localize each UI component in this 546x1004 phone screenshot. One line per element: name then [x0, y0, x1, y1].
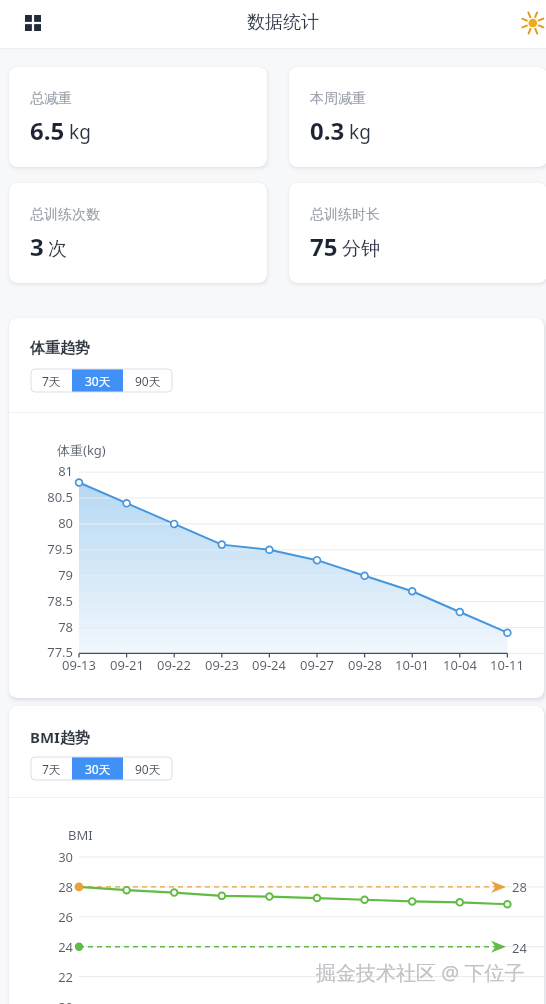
staticText: 总训练时长	[310, 206, 380, 224]
staticText: 79	[16, 566, 73, 584]
button[interactable]: 总减重	[9, 67, 267, 167]
staticText: 分钟	[342, 237, 380, 261]
staticText: 28	[16, 878, 73, 896]
staticText: 75	[310, 230, 338, 263]
staticText: 28	[512, 878, 527, 896]
staticText: kg	[69, 119, 91, 145]
staticText: 09-22	[152, 656, 196, 674]
staticText: 79.5	[16, 540, 73, 558]
button[interactable]: 本周减重	[289, 67, 546, 167]
staticText: 掘金技术社区 @ 下位子	[316, 959, 525, 986]
staticText: 09-27	[295, 656, 339, 674]
button[interactable]: Brightness	[510, 5, 546, 41]
staticText: 80.5	[16, 488, 73, 506]
staticText: 78	[16, 618, 73, 636]
staticText: 90天	[135, 761, 161, 777]
staticText: 体重(kg)	[57, 441, 106, 459]
staticText: 24	[16, 938, 73, 956]
staticText: 30	[16, 848, 73, 866]
button[interactable]: 90天	[123, 369, 172, 392]
staticText: 26	[16, 908, 73, 926]
staticText: 30天	[85, 373, 111, 389]
staticText: 09-21	[105, 656, 149, 674]
staticText: 30天	[85, 761, 111, 777]
staticText: 09-23	[200, 656, 244, 674]
button[interactable]: 90天	[123, 757, 172, 780]
button[interactable]: Menu	[15, 5, 51, 41]
staticText: kg	[349, 119, 371, 145]
staticText: 总减重	[30, 90, 72, 108]
staticText: 20	[16, 998, 73, 1004]
staticText: 09-28	[343, 656, 387, 674]
staticText: 24	[512, 939, 527, 957]
staticText: 90天	[135, 373, 161, 389]
staticText: 本周减重	[310, 90, 366, 108]
staticText: 09-13	[57, 656, 101, 674]
staticText: BMI	[68, 826, 93, 844]
staticText: 78.5	[16, 592, 73, 610]
staticText: 81	[16, 462, 73, 480]
staticText: 10-01	[390, 656, 434, 674]
button[interactable]: 7天	[31, 757, 72, 780]
button[interactable]: 30天	[72, 369, 123, 392]
staticText: 77.5	[16, 643, 73, 661]
button[interactable]: 总训练次数	[9, 183, 267, 283]
staticText: 体重趋势	[30, 339, 90, 358]
button[interactable]: 7天	[31, 369, 72, 392]
staticText: 7天	[42, 373, 61, 389]
staticText: 10-11	[485, 656, 529, 674]
button[interactable]: 30天	[72, 757, 123, 780]
staticText: 0.3	[310, 114, 345, 147]
staticText: 总训练次数	[30, 206, 100, 224]
staticText: 10-04	[438, 656, 482, 674]
staticText: 09-24	[247, 656, 291, 674]
staticText: 3	[30, 230, 44, 263]
staticText: 80	[16, 514, 73, 532]
button[interactable]: 总训练时长	[289, 183, 546, 283]
staticText: 7天	[42, 761, 61, 777]
staticText: 22	[16, 968, 73, 986]
staticText: 6.5	[30, 114, 65, 147]
staticText: BMI趋势	[30, 727, 90, 747]
staticText: 次	[48, 237, 67, 261]
staticText: 数据统计	[247, 11, 319, 34]
